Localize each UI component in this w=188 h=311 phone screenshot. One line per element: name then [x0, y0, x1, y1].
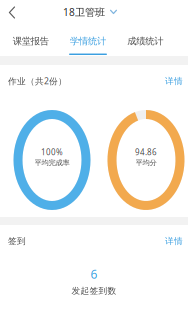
button[interactable]: Back — [1, 0, 23, 24]
button[interactable]: 学情统计 — [59, 29, 117, 55]
staticText: 作业（共2份） — [8, 75, 67, 87]
staticText: 100% — [41, 147, 63, 158]
staticText: 课堂报告 — [13, 35, 49, 47]
staticText: 学情统计 — [70, 35, 106, 47]
staticText: 6 — [90, 266, 97, 282]
button[interactable]: 详情 — [162, 73, 186, 88]
staticText: 签到 — [8, 235, 26, 246]
staticText: 平均完成率 — [34, 158, 69, 167]
staticText: 成绩统计 — [127, 35, 163, 47]
staticText: 详情 — [165, 235, 183, 246]
button[interactable]: 课堂报告 — [2, 29, 59, 55]
staticText: 详情 — [165, 75, 183, 86]
staticText: 18卫管班 — [63, 5, 105, 19]
button[interactable]: 详情 — [162, 233, 186, 248]
staticText: 平均分 — [135, 158, 156, 167]
staticText: 94.86 — [135, 147, 157, 158]
staticText: 发起签到数 — [71, 285, 116, 296]
button[interactable]: 成绩统计 — [117, 29, 174, 55]
